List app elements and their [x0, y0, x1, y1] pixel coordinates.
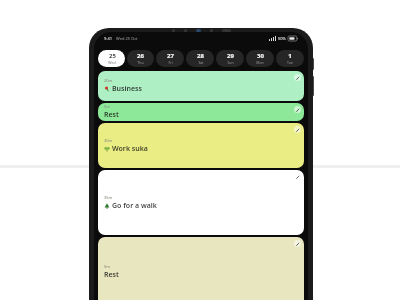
- button[interactable]: 26: [127, 50, 154, 67]
- staticText: Sun: [227, 60, 234, 65]
- staticText: 26: [137, 52, 144, 60]
- button[interactable]: 30: [246, 50, 274, 67]
- staticText: Fri: [168, 60, 173, 65]
- staticText: Wed: [108, 60, 116, 65]
- button[interactable]: Edit Go for a walk: [294, 173, 301, 180]
- staticText: Sat: [198, 60, 204, 65]
- staticText: 35m: [104, 195, 113, 200]
- staticText: 5m: [104, 104, 111, 109]
- button[interactable]: Edit Go for a walk: [98, 170, 304, 235]
- staticText: Rest: [104, 110, 119, 120]
- staticText: 1: [288, 52, 292, 60]
- button[interactable]: 27: [156, 50, 184, 67]
- button[interactable]: Edit Rest: [294, 240, 301, 247]
- button[interactable]: Edit Rest: [294, 106, 301, 113]
- button[interactable]: Edit Rest: [98, 237, 304, 300]
- staticText: Go for a walk: [112, 201, 157, 211]
- staticText: 25: [109, 52, 116, 60]
- button[interactable]: 29: [216, 50, 244, 67]
- staticText: 50%: [278, 36, 286, 41]
- staticText: 27: [167, 52, 174, 60]
- staticText: 30: [257, 52, 264, 60]
- staticText: Work suka: [112, 144, 148, 154]
- staticText: 28: [197, 52, 204, 60]
- staticText: Thu: [137, 60, 144, 65]
- staticText: Wed 25 Oct: [116, 36, 138, 41]
- staticText: 20m: [104, 78, 113, 83]
- button[interactable]: Edit Business: [98, 71, 304, 101]
- button[interactable]: 1: [276, 50, 304, 67]
- staticText: Tue: [287, 60, 293, 65]
- button[interactable]: 25: [98, 50, 125, 67]
- staticText: 9:41: [104, 36, 112, 41]
- staticText: Business: [112, 84, 142, 94]
- staticText: 29: [227, 52, 234, 60]
- button[interactable]: Edit Work suka: [294, 126, 301, 133]
- staticText: Mon: [256, 60, 264, 65]
- staticText: 30m: [104, 138, 113, 143]
- button[interactable]: Edit Rest: [98, 103, 304, 121]
- button[interactable]: Edit Business: [294, 74, 301, 81]
- button[interactable]: 28: [186, 50, 214, 67]
- staticText: 5m: [104, 264, 111, 269]
- button[interactable]: Edit Work suka: [98, 123, 304, 168]
- staticText: Rest: [104, 270, 119, 280]
